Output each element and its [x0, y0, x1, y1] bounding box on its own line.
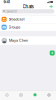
staticText: Groups — [8, 25, 20, 29]
staticText: Search — [6, 9, 17, 13]
staticText: 9:41 — [3, 0, 9, 4]
staticText: Maya Chen — [9, 38, 28, 43]
button[interactable]: Chats — [28, 90, 42, 100]
button[interactable]: Broadcast — [0, 15, 56, 23]
button[interactable]: Updates — [0, 90, 14, 100]
button[interactable]: Search — [2, 9, 54, 13]
button[interactable]: Maya Chen — [0, 36, 56, 45]
button[interactable]: New chat — [48, 3, 54, 10]
button[interactable]: Settings — [42, 90, 56, 100]
staticText: Chats — [22, 4, 33, 9]
button[interactable]: Groups — [0, 23, 56, 31]
button[interactable]: Compose — [50, 50, 55, 55]
button[interactable]: Calls — [14, 90, 28, 100]
staticText: Broadcast — [8, 17, 24, 21]
